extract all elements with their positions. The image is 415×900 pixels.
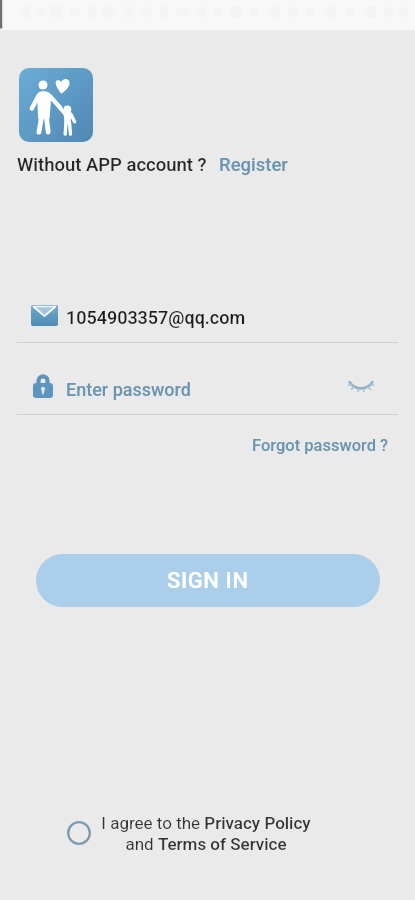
button[interactable]: SIGN IN bbox=[36, 554, 380, 607]
button[interactable]: Show password bbox=[343, 368, 379, 404]
staticText: Register bbox=[219, 154, 288, 176]
staticText: Forgot password ? bbox=[252, 436, 389, 455]
button[interactable]: I agree to the Privacy Policy and Terms … bbox=[98, 813, 314, 854]
staticText: I agree to the Privacy Policy and Terms … bbox=[98, 813, 314, 854]
button[interactable]: Agree to privacy policy and terms bbox=[64, 818, 94, 848]
button[interactable]: Enter password bbox=[66, 379, 191, 400]
button[interactable]: Register bbox=[219, 154, 288, 176]
button[interactable]: 1054903357@qq.com bbox=[66, 307, 246, 328]
staticText: Without APP account ? bbox=[17, 154, 207, 176]
button[interactable]: App logo bbox=[19, 68, 93, 142]
staticText: SIGN IN bbox=[167, 568, 249, 594]
button[interactable]: Forgot password ? bbox=[0, 436, 389, 455]
staticText: 1054903357@qq.com bbox=[66, 307, 246, 328]
staticText: Enter password bbox=[66, 379, 191, 400]
